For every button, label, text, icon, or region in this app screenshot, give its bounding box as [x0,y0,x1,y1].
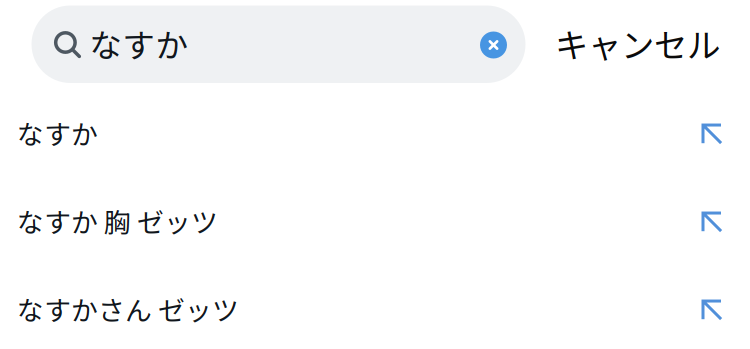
button[interactable]: なすか [31,5,525,83]
staticText: なすか [89,20,188,67]
staticText: なすか 胸 ゼッツ [17,201,218,240]
button[interactable]: Use this suggestion [683,193,741,251]
button[interactable]: Use this suggestion [683,281,741,339]
button[interactable]: なすか [0,90,750,178]
button[interactable]: なすかさん ゼッツ [0,266,750,349]
staticText: なすかさん ゼッツ [17,289,239,328]
button[interactable]: キャンセル [555,4,727,82]
staticText: キャンセル [555,19,720,67]
button[interactable]: Clear text [471,23,515,67]
button[interactable]: Use this suggestion [683,105,741,163]
staticText: なすか [17,113,98,152]
button[interactable]: なすか 胸 ゼッツ [0,178,750,266]
